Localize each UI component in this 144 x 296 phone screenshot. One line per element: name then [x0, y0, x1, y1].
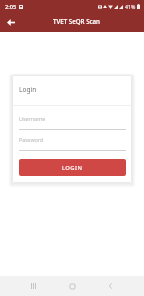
- button[interactable]: Home: [52, 276, 92, 296]
- staticText: 41%: [125, 3, 136, 10]
- staticText: TVET SeQR Scan: [53, 17, 100, 25]
- button[interactable]: Recent apps: [0, 276, 52, 296]
- staticText: Username: [19, 115, 46, 122]
- staticText: 2:05: [5, 3, 17, 11]
- button[interactable]: LOGIN: [19, 159, 126, 176]
- button[interactable]: Navigate back: [0, 13, 21, 32]
- staticText: Password: [19, 136, 44, 143]
- staticText: LOGIN: [62, 164, 83, 172]
- staticText: Login: [19, 85, 37, 94]
